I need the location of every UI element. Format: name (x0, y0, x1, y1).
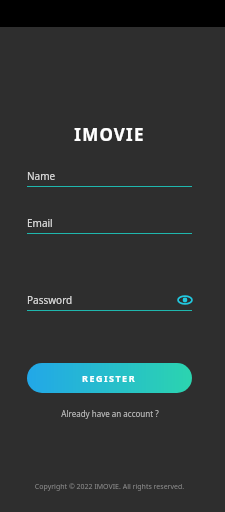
staticText: Copyright © 2022 IMOVIE. All rights rese… (27, 482, 192, 492)
button[interactable]: Already have an account ? (27, 408, 192, 419)
staticText: IMOVIE (27, 123, 192, 146)
staticText: Name (27, 169, 192, 183)
button[interactable]: Name (27, 169, 192, 187)
button[interactable]: Show password (178, 293, 192, 307)
button[interactable]: REGISTER (27, 363, 192, 393)
staticText: REGISTER (82, 372, 137, 384)
staticText: Password (27, 293, 178, 307)
button[interactable]: Email (27, 216, 192, 234)
staticText: Already have an account ? (61, 408, 159, 419)
button[interactable]: Password (27, 293, 192, 311)
staticText: Email (27, 216, 192, 230)
